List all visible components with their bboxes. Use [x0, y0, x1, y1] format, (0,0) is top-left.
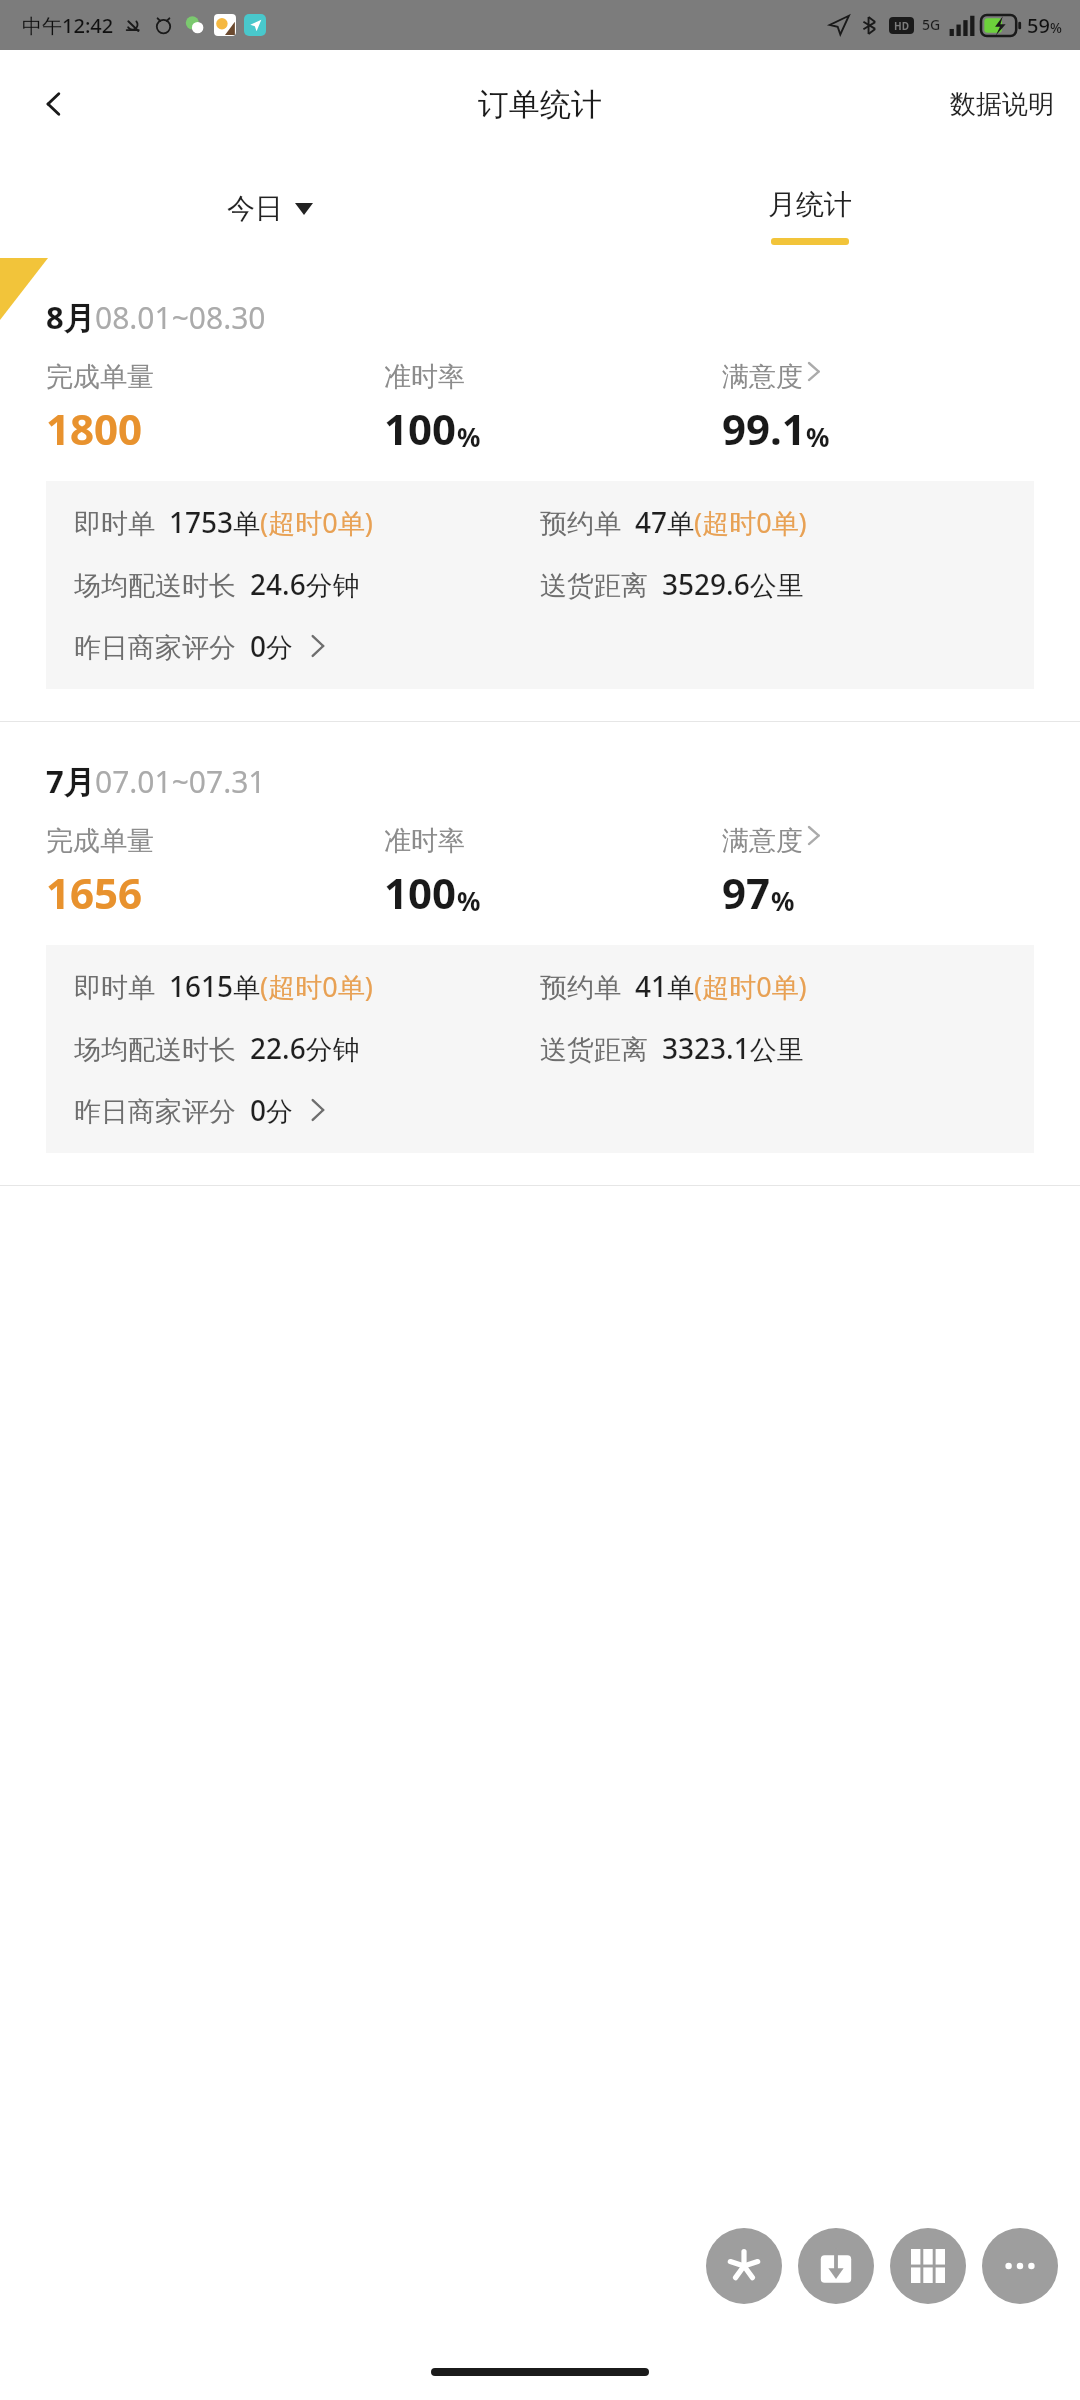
button[interactable]: 昨日商家评分 0分 [74, 1091, 325, 1129]
staticText: 99.1 [722, 400, 806, 457]
button[interactable]: 满意度 [722, 360, 1060, 457]
staticText: 100 [384, 400, 457, 457]
staticText: % [457, 419, 481, 454]
staticText: 即时单 1753单(超时0单) [74, 503, 373, 541]
staticText: 数据说明 [950, 88, 1054, 121]
staticText: 97 [722, 864, 771, 921]
staticText: 即时单 1615单(超时0单) [74, 967, 373, 1005]
staticText: % [457, 883, 481, 918]
staticText: 昨日商家评分 0分 [74, 627, 294, 665]
staticText: 完成单量 [46, 824, 154, 858]
staticText: 中午12:42 [22, 12, 114, 39]
staticText: 满意度 [722, 824, 803, 858]
staticText: % [806, 419, 830, 454]
button[interactable]: Assistant [706, 2228, 782, 2304]
staticText: 送货距离 3323.1公里 [540, 1029, 804, 1067]
staticText: 07.01~07.31 [95, 761, 266, 802]
staticText: 满意度 [722, 360, 803, 394]
button[interactable]: Back [26, 76, 82, 132]
staticText: 月统计 [768, 187, 852, 222]
button[interactable]: 月统计 [540, 158, 1080, 258]
staticText: 预约单 47单(超时0单) [540, 503, 807, 541]
button[interactable]: 今日 [0, 158, 540, 258]
staticText: 100 [384, 864, 457, 921]
staticText: 完成单量 [46, 360, 154, 394]
staticText: 今日 [227, 191, 283, 226]
staticText: 7月 [46, 760, 95, 802]
staticText: % [771, 883, 795, 918]
button[interactable]: 满意度 [722, 824, 1060, 921]
button[interactable]: 数据说明 [924, 74, 1080, 135]
button[interactable]: More [982, 2228, 1058, 2304]
button[interactable]: 昨日商家评分 0分 [74, 627, 325, 665]
staticText: 场均配送时长 22.6分钟 [74, 1029, 360, 1067]
staticText: 5G [922, 15, 941, 34]
staticText: 1800 [46, 400, 143, 457]
staticText: 送货距离 3529.6公里 [540, 565, 804, 603]
staticText: 8月 [46, 296, 95, 338]
staticText: 08.01~08.30 [95, 297, 266, 338]
staticText: 1656 [46, 864, 143, 921]
staticText: 订单统计 [478, 85, 602, 124]
staticText: 昨日商家评分 0分 [74, 1091, 294, 1129]
staticText: 预约单 41单(超时0单) [540, 967, 807, 1005]
button[interactable]: Apps [890, 2228, 966, 2304]
staticText: 准时率 [384, 824, 465, 858]
staticText: 59% [1027, 12, 1062, 39]
staticText: 场均配送时长 24.6分钟 [74, 565, 360, 603]
staticText: HD [894, 19, 909, 33]
staticText: 准时率 [384, 360, 465, 394]
button[interactable]: Download [798, 2228, 874, 2304]
